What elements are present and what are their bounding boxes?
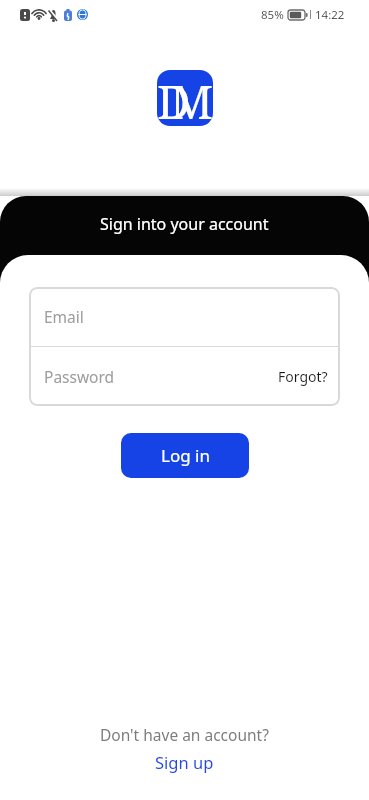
staticText: 14:22: [315, 7, 345, 23]
button[interactable]: Forgot?: [278, 367, 328, 386]
staticText: Email: [44, 306, 84, 327]
staticText: 85%: [261, 7, 284, 23]
staticText: Sign into your account: [100, 213, 269, 235]
button[interactable]: Sign up: [155, 751, 214, 773]
button[interactable]: Email: [29, 287, 340, 346]
staticText: M: [170, 70, 213, 126]
staticText: Log in: [161, 444, 210, 467]
staticText: Don't have an account?: [100, 724, 269, 745]
staticText: Password: [44, 366, 115, 387]
staticText: D: [157, 70, 191, 126]
button[interactable]: Log in: [121, 433, 249, 478]
button[interactable]: Password: [29, 347, 340, 406]
